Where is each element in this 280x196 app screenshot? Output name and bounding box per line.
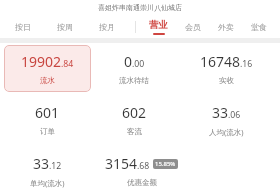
staticText: 单均(流水) [30,178,65,188]
staticText: 流水 [40,76,55,85]
staticText: 实收 [219,76,234,85]
staticText: 601 [35,103,60,122]
button[interactable]: 33.12 [4,145,91,196]
button[interactable]: 19902.84 [4,45,91,92]
button[interactable]: 33.06 [179,94,273,145]
button[interactable]: 按周 [55,19,75,35]
staticText: 16748.16 [200,52,253,71]
staticText: 营业 [149,19,168,31]
staticText: 按月 [99,22,115,32]
staticText: 15.85% [155,160,176,168]
staticText: 19902.84 [21,52,74,71]
button[interactable]: 16748.16 [179,43,273,94]
button[interactable]: 会员 [183,19,203,35]
staticText: 33.12 [33,154,62,173]
staticText: 优惠金额 [127,178,157,187]
staticText: 流水待结 [119,76,149,85]
staticText: 按日 [15,22,31,32]
staticText: 0.00 [124,52,145,71]
staticText: 602 [122,103,147,122]
staticText: 喜姐炸串南通崇川八仙城店 [98,3,182,12]
button[interactable]: 营业 [147,19,170,35]
button[interactable]: 外卖 [216,19,236,35]
button[interactable]: 按日 [13,19,33,35]
button[interactable]: 602 [91,94,177,145]
button[interactable]: 0.00 [91,43,177,94]
staticText: 订单 [40,127,55,136]
button[interactable]: 3154.68 [91,145,191,196]
staticText: 外卖 [218,22,234,32]
staticText: 人均(流水) [209,127,244,137]
button[interactable]: 按月 [97,19,117,35]
staticText: 3154.68 [105,154,150,173]
staticText: 33.06 [212,103,241,122]
staticText: 客流 [127,127,142,136]
staticText: 堂食 [251,22,267,32]
staticText: 按周 [57,22,73,32]
staticText: 会员 [185,22,201,32]
button[interactable]: 601 [4,94,91,145]
button[interactable]: 堂食 [249,19,269,35]
